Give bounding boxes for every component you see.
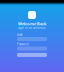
staticText: Password (17, 42, 29, 46)
button[interactable] (17, 53, 47, 57)
staticText: Email (17, 33, 23, 36)
staticText: Welcome Back (18, 21, 46, 26)
staticText: Sign in to continue (18, 26, 46, 30)
